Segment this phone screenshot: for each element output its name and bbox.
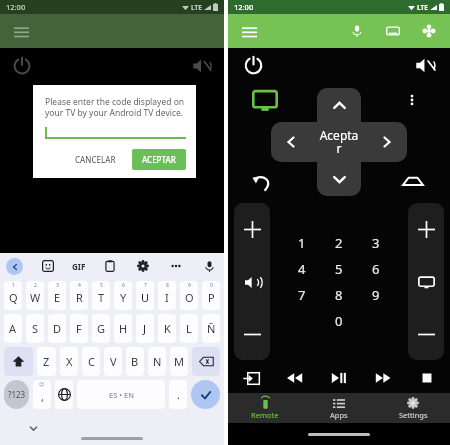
button[interactable]: 4 xyxy=(70,281,88,310)
button[interactable]: 7 xyxy=(136,281,154,310)
button[interactable]: Down xyxy=(234,308,270,360)
staticText: ☺ xyxy=(39,381,45,387)
staticText: Settings xyxy=(399,410,428,420)
staticText: . xyxy=(177,387,180,402)
button[interactable]: 7 xyxy=(284,282,320,308)
staticText: 2 xyxy=(335,234,343,252)
button[interactable]: Stickers xyxy=(39,257,57,275)
button[interactable]: . xyxy=(169,380,187,409)
button[interactable]: TV xyxy=(250,86,280,116)
button[interactable]: Up xyxy=(408,203,444,256)
button[interactable]: ☺ xyxy=(33,380,51,409)
button[interactable]: Down xyxy=(408,308,444,360)
button[interactable]: K xyxy=(158,314,176,343)
button[interactable]: 2 xyxy=(320,230,357,256)
button[interactable]: Menu xyxy=(238,20,260,42)
button[interactable]: 3 xyxy=(48,281,66,310)
button[interactable]: Gamepad xyxy=(418,20,440,42)
button[interactable]: Up xyxy=(234,203,270,256)
button[interactable]: Back xyxy=(6,258,23,275)
button[interactable]: Fast forward xyxy=(368,363,398,393)
button[interactable]: Touchpad xyxy=(382,20,404,42)
button[interactable]: Power xyxy=(10,54,34,78)
button[interactable]: 5 xyxy=(92,281,110,310)
button[interactable]: 0 xyxy=(320,308,357,334)
button[interactable]: M xyxy=(170,347,188,376)
button[interactable]: D xyxy=(48,314,66,343)
button[interactable]: S xyxy=(26,314,44,343)
staticText: 3 xyxy=(56,282,59,289)
button[interactable]: L xyxy=(180,314,198,343)
button[interactable]: J xyxy=(136,314,154,343)
button[interactable]: 3 xyxy=(357,230,394,256)
button[interactable]: 9 xyxy=(180,281,198,310)
button[interactable]: 8 xyxy=(158,281,176,310)
button[interactable]: V xyxy=(104,347,122,376)
button[interactable]: Stop xyxy=(412,363,442,393)
button[interactable]: Mute xyxy=(190,54,214,78)
button[interactable]: Power xyxy=(240,52,266,78)
button[interactable]: ES • EN xyxy=(77,380,165,409)
button[interactable]: Clipboard xyxy=(101,257,119,275)
button[interactable]: Z xyxy=(37,347,56,376)
staticText: 9 xyxy=(372,286,380,304)
button[interactable]: ?123 xyxy=(4,380,29,409)
button[interactable]: Mute xyxy=(412,52,438,78)
button[interactable]: CANCELAR xyxy=(67,150,124,169)
button[interactable]: Home xyxy=(398,166,428,196)
button[interactable]: Back xyxy=(248,168,278,198)
button[interactable]: X xyxy=(60,347,78,376)
button[interactable]: Input xyxy=(236,363,266,393)
button[interactable]: 1 xyxy=(4,281,22,310)
staticText: X xyxy=(66,354,73,369)
button[interactable]: More options xyxy=(398,86,426,114)
button[interactable]: 9 xyxy=(357,282,394,308)
button[interactable]: Down xyxy=(317,162,361,196)
button[interactable]: 1 xyxy=(284,230,320,256)
button[interactable]: Voice xyxy=(346,20,368,42)
button[interactable]: ACEPTAR xyxy=(132,149,186,170)
button[interactable]: 6 xyxy=(357,256,394,282)
button[interactable]: G xyxy=(92,314,110,343)
button[interactable]: Play pause xyxy=(324,363,354,393)
button[interactable]: Left xyxy=(271,122,311,162)
button[interactable]: GIF xyxy=(72,261,86,272)
button[interactable]: B xyxy=(126,347,144,376)
staticText: 4 xyxy=(78,282,81,289)
button[interactable]: Language xyxy=(55,380,73,409)
button[interactable]: Ñ xyxy=(202,314,220,343)
staticText: GIF xyxy=(72,261,86,272)
button[interactable]: Settings xyxy=(376,393,450,423)
button[interactable]: H xyxy=(114,314,132,343)
button[interactable]: 4 xyxy=(284,256,320,282)
button[interactable]: Rewind xyxy=(280,363,310,393)
button[interactable]: F xyxy=(70,314,88,343)
button[interactable]: Voice input xyxy=(200,257,218,275)
button[interactable]: 0 xyxy=(202,281,220,310)
button[interactable]: Up xyxy=(317,88,361,122)
button[interactable]: 6 xyxy=(114,281,132,310)
staticText: Y xyxy=(120,290,127,305)
staticText: 3 xyxy=(372,234,380,252)
staticText: I xyxy=(165,290,169,305)
button[interactable]: Aceptar xyxy=(317,120,361,164)
button[interactable]: Enter xyxy=(191,380,220,409)
button[interactable]: Menu xyxy=(10,20,32,42)
button[interactable]: 5 xyxy=(320,256,357,282)
staticText: F xyxy=(76,321,82,336)
button[interactable]: Apps xyxy=(302,393,376,423)
button[interactable]: N xyxy=(148,347,166,376)
button[interactable]: A xyxy=(4,314,22,343)
button[interactable]: Settings xyxy=(134,257,152,275)
button[interactable]: Backspace xyxy=(192,347,220,376)
button[interactable]: C xyxy=(82,347,100,376)
staticText: B xyxy=(131,354,139,369)
button[interactable]: 8 xyxy=(320,282,357,308)
button[interactable]: Right xyxy=(367,122,407,162)
button[interactable]: More xyxy=(167,257,185,275)
button[interactable]: Shift xyxy=(4,347,33,376)
staticText: LTE xyxy=(417,3,428,12)
button[interactable]: Hide keyboard xyxy=(26,421,40,435)
button[interactable]: 2 xyxy=(26,281,44,310)
button[interactable]: Remote xyxy=(228,393,302,423)
